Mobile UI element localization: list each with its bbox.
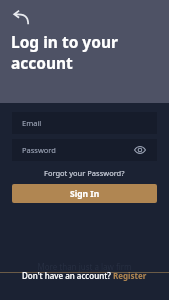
button[interactable]: Email: [12, 112, 157, 134]
staticText: Register: [113, 270, 147, 281]
button[interactable]: Don't have an account?: [22, 270, 147, 281]
button[interactable]: Back: [9, 7, 33, 31]
staticText: Log in to your: [11, 31, 118, 52]
button[interactable]: Password: [12, 139, 157, 161]
staticText: More than just a law firm: [37, 261, 132, 272]
staticText: Password: [22, 145, 56, 155]
button[interactable]: Sign In: [12, 184, 157, 203]
staticText: Forgot your Password?: [44, 168, 125, 178]
button[interactable]: Forgot your Password?: [42, 166, 127, 180]
staticText: Email: [22, 118, 42, 128]
staticText: account: [11, 52, 73, 73]
button[interactable]: Show password: [133, 143, 147, 157]
staticText: Sign In: [70, 188, 100, 200]
staticText: Don't have an account?: [22, 270, 113, 281]
